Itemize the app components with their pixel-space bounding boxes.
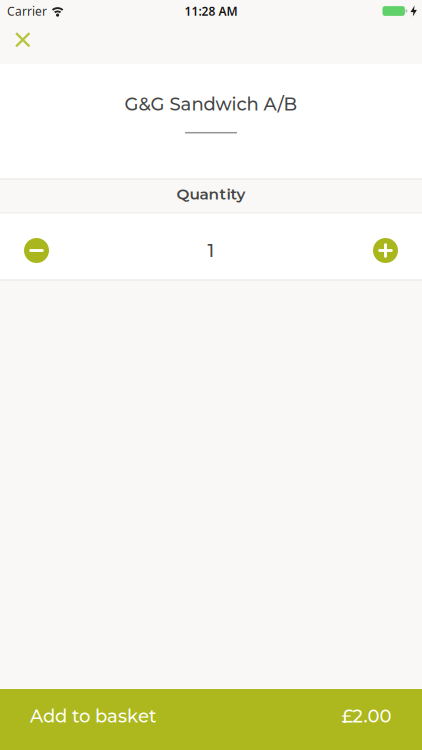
staticText: Carrier bbox=[7, 3, 47, 19]
staticText: 1 bbox=[207, 239, 214, 261]
button[interactable] bbox=[24, 238, 49, 263]
staticText: 11:28 AM bbox=[184, 3, 237, 19]
staticText: £2.00 bbox=[341, 705, 391, 727]
button[interactable]: Add to basket bbox=[0, 689, 422, 750]
staticText: Add to basket bbox=[30, 705, 156, 727]
button[interactable] bbox=[373, 238, 398, 263]
staticText: Quantity bbox=[176, 185, 245, 203]
button[interactable] bbox=[0, 22, 44, 64]
staticText: G&G Sandwich A/B bbox=[124, 93, 297, 115]
